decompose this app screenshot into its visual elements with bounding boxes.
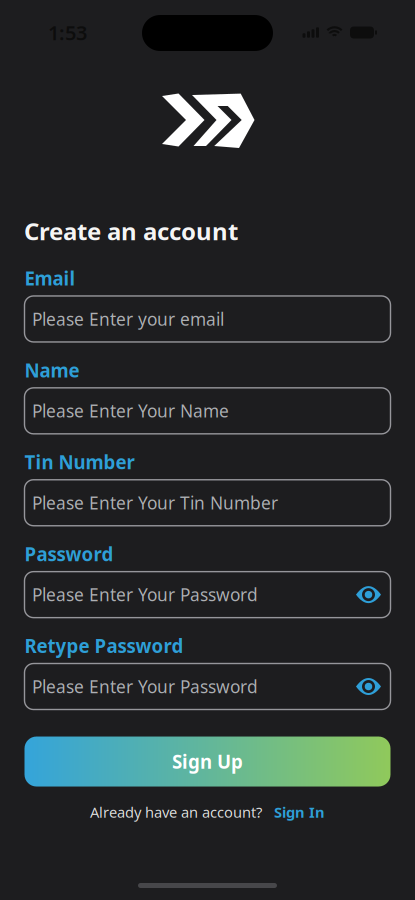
button[interactable]: Show password [356,585,381,604]
staticText: 1:53 [48,19,87,46]
button[interactable]: Please Enter Your Password [24,572,390,618]
staticText: Already have an account? [90,802,262,822]
button[interactable]: Please Enter Your Tin Number [24,480,390,526]
staticText: Please Enter Your Name [32,399,229,422]
button[interactable]: Please Enter Your Name [24,388,390,434]
staticText: Retype Password [24,633,183,658]
staticText: Tin Number [24,450,134,474]
staticText: Please Enter your email [32,307,224,330]
staticText: Password [24,541,113,566]
button[interactable]: Sign Up [24,736,390,786]
staticText: Sign In [274,802,325,822]
staticText: Email [24,266,75,291]
button[interactable]: Please Enter your email [24,296,390,342]
button[interactable]: Please Enter Your Password [24,663,390,709]
staticText: Sign Up [172,749,243,774]
staticText: Please Enter Your Tin Number [32,491,278,514]
staticText: Please Enter Your Password [32,675,258,698]
button[interactable]: Sign In [274,802,325,822]
staticText: Please Enter Your Password [32,583,258,606]
button[interactable]: Show password [356,677,381,696]
staticText: Create an account [24,215,238,247]
staticText: Name [24,358,79,383]
